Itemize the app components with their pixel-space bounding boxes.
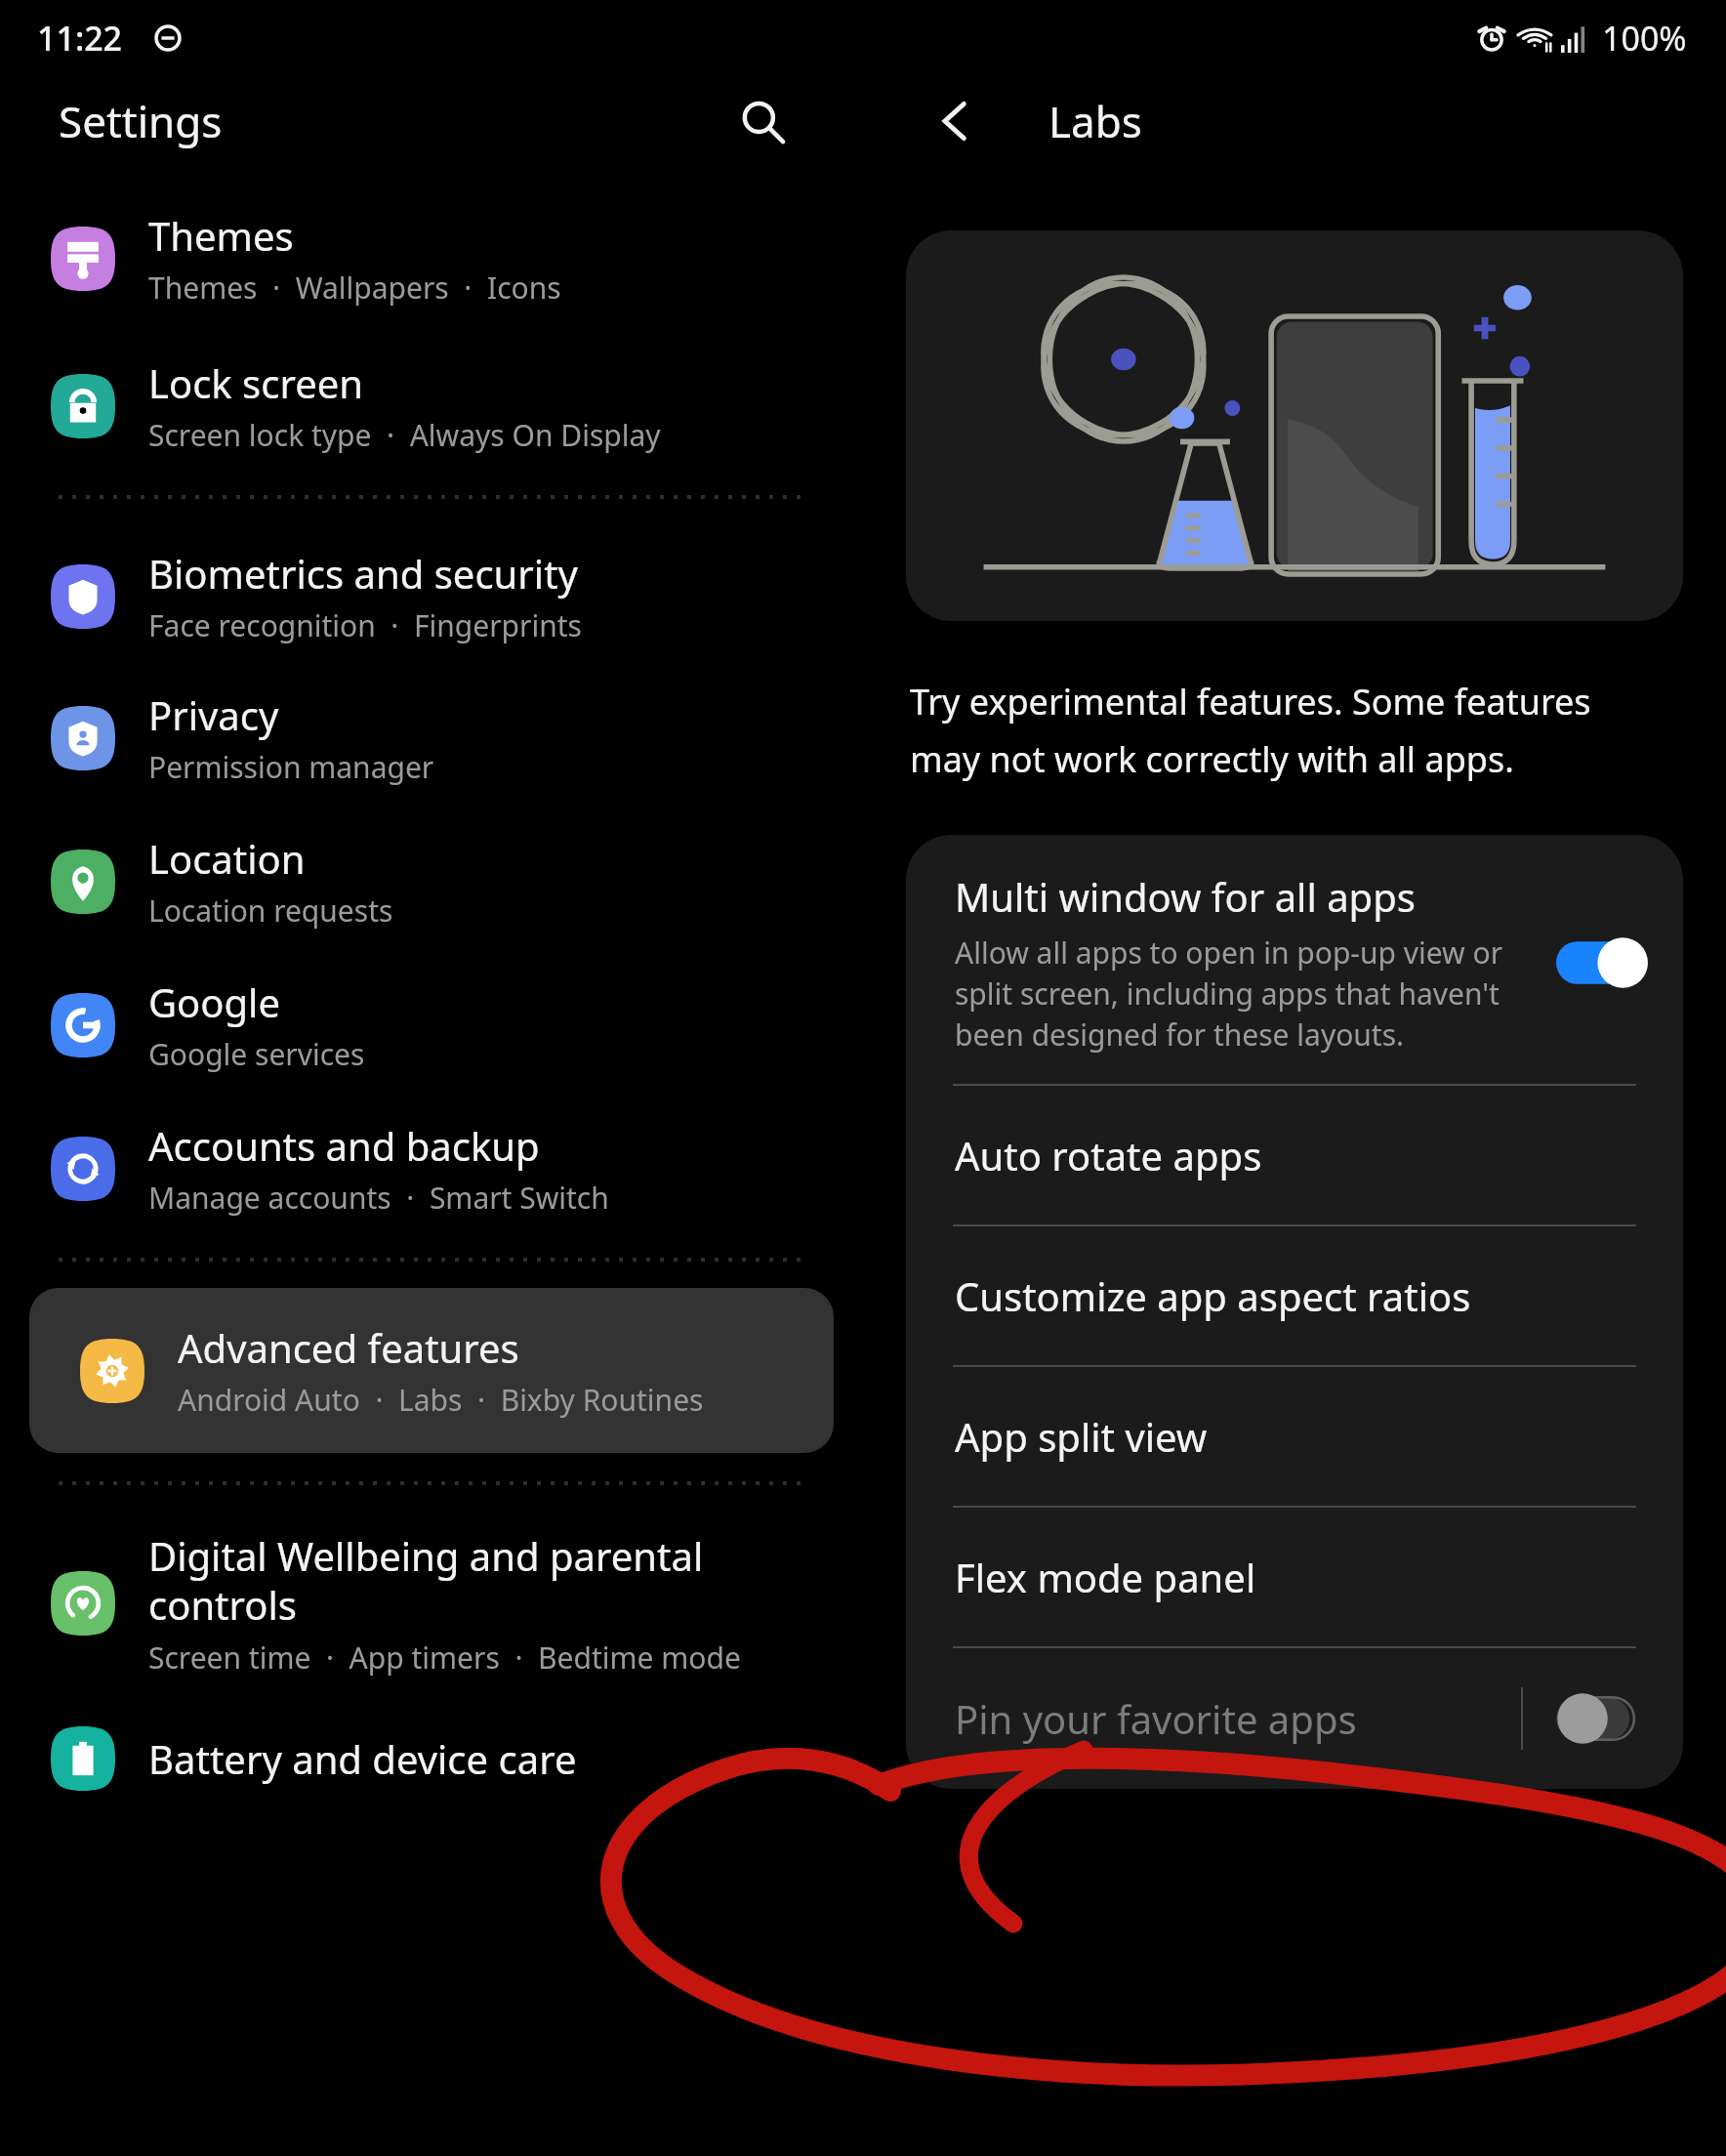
button[interactable]: Lock screen xyxy=(0,356,863,455)
staticText: Manage accounts · Smart Switch xyxy=(148,1178,609,1218)
staticText: 11:22 xyxy=(37,16,123,61)
staticText: Pin your favorite apps xyxy=(955,1692,1521,1745)
button[interactable]: App split view xyxy=(906,1367,1683,1506)
button[interactable]: Location xyxy=(0,832,863,931)
staticText: Battery and device care xyxy=(148,1732,577,1785)
button[interactable]: Biometrics and security xyxy=(0,547,863,645)
button[interactable]: Customize app aspect ratios xyxy=(906,1226,1683,1365)
button[interactable]: Flex mode panel xyxy=(906,1508,1683,1646)
staticText: Multi window for all apps xyxy=(955,870,1416,923)
staticText: Themes xyxy=(148,209,294,262)
button[interactable]: Search xyxy=(730,90,793,152)
staticText: Biometrics and security xyxy=(148,547,578,600)
staticText: Privacy xyxy=(148,688,279,741)
button[interactable]: Pin your favorite apps xyxy=(906,1648,1683,1789)
button[interactable]: Back xyxy=(922,87,990,155)
staticText: Google services xyxy=(148,1034,365,1074)
staticText: Screen lock type · Always On Display xyxy=(148,415,661,455)
button[interactable]: Digital Wellbeing and parental controls xyxy=(0,1529,863,1678)
staticText: Face recognition · Fingerprints xyxy=(148,605,582,645)
staticText: App split view xyxy=(955,1410,1208,1463)
staticText: Advanced features xyxy=(178,1321,519,1374)
staticText: Themes · Wallpapers · Icons xyxy=(148,268,561,308)
staticText: Google xyxy=(148,975,280,1028)
button[interactable]: Multi window for all apps xyxy=(906,835,1683,1084)
button[interactable]: On xyxy=(1556,935,1648,990)
staticText: Screen time · App timers · Bedtime mode xyxy=(148,1638,741,1678)
staticText: Flex mode panel xyxy=(955,1551,1256,1603)
staticText: Digital Wellbeing and parental controls xyxy=(148,1529,704,1632)
button[interactable]: Google xyxy=(0,975,863,1074)
staticText: 100% xyxy=(1602,16,1687,61)
button[interactable]: Accounts and backup xyxy=(0,1119,863,1218)
staticText: Try experimental features. Some features… xyxy=(910,678,1591,782)
staticText: Location xyxy=(148,832,306,885)
staticText: Accounts and backup xyxy=(148,1119,540,1172)
staticText: Location requests xyxy=(148,891,393,931)
staticText: Customize app aspect ratios xyxy=(955,1269,1471,1322)
button[interactable]: Off xyxy=(1556,1691,1648,1746)
staticText: Allow all apps to open in pop-up view or… xyxy=(955,933,1503,1055)
staticText: Settings xyxy=(59,92,223,150)
button[interactable]: Advanced features xyxy=(29,1288,834,1453)
staticText: Labs xyxy=(1048,92,1142,150)
button[interactable]: Themes xyxy=(0,209,863,308)
button[interactable]: Privacy xyxy=(0,688,863,787)
staticText: Android Auto · Labs · Bixby Routines xyxy=(178,1380,704,1420)
staticText: Permission manager xyxy=(148,747,434,787)
button[interactable]: Battery and device care xyxy=(0,1726,863,1791)
button[interactable]: Auto rotate apps xyxy=(906,1086,1683,1224)
staticText: Auto rotate apps xyxy=(955,1129,1262,1182)
staticText: Lock screen xyxy=(148,356,364,409)
